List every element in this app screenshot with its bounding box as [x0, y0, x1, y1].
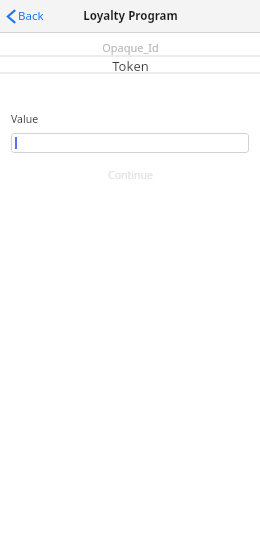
staticText: Opaque_Id: [102, 40, 159, 55]
staticText: Loyalty Program: [83, 8, 178, 24]
button[interactable]: Value text field: [11, 133, 249, 153]
button[interactable]: Continue: [0, 167, 260, 183]
staticText: Continue: [108, 168, 153, 182]
staticText: Back: [18, 8, 44, 24]
staticText: Value: [11, 112, 39, 126]
staticText: Token: [112, 57, 149, 72]
button[interactable]: Back: [0, 0, 52, 32]
